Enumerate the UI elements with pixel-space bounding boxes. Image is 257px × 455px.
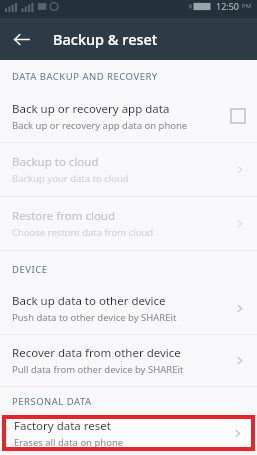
button[interactable]: Back up or recovery app data xyxy=(0,90,257,142)
staticText: Back up or recovery app data xyxy=(12,101,170,117)
staticText: PM xyxy=(242,2,252,10)
button[interactable]: Recover data from other device xyxy=(0,335,257,386)
staticText: Factory data reset xyxy=(14,418,111,434)
staticText: Backup to cloud xyxy=(12,154,99,170)
button[interactable]: Restore from cloud xyxy=(0,197,257,250)
staticText: Restore from cloud xyxy=(12,208,116,224)
staticText: Recover data from other device xyxy=(12,345,181,361)
staticText: Choose restore data from cloud xyxy=(12,226,154,239)
staticText: DATA BACKUP AND RECOVERY xyxy=(12,70,158,83)
staticText: Pull data from other device by SHAREit xyxy=(12,363,184,376)
staticText: Backup your data to cloud xyxy=(12,172,129,185)
button[interactable]: Backup to cloud xyxy=(0,143,257,196)
button[interactable]: Back xyxy=(0,18,42,60)
staticText: Backup & reset xyxy=(53,29,158,49)
button[interactable]: Factory data reset xyxy=(2,415,255,451)
staticText: PERSONAL DATA xyxy=(12,395,92,408)
staticText: 12:50 xyxy=(216,0,240,12)
staticText: Erases all data on phone xyxy=(14,436,124,449)
button[interactable]: Back up data to other device xyxy=(0,283,257,334)
staticText: Back up or recovery app data on phone xyxy=(12,119,188,132)
staticText: DEVICE xyxy=(12,263,48,276)
staticText: Push data to other device by SHAREit xyxy=(12,311,177,324)
staticText: Back up data to other device xyxy=(12,293,166,309)
